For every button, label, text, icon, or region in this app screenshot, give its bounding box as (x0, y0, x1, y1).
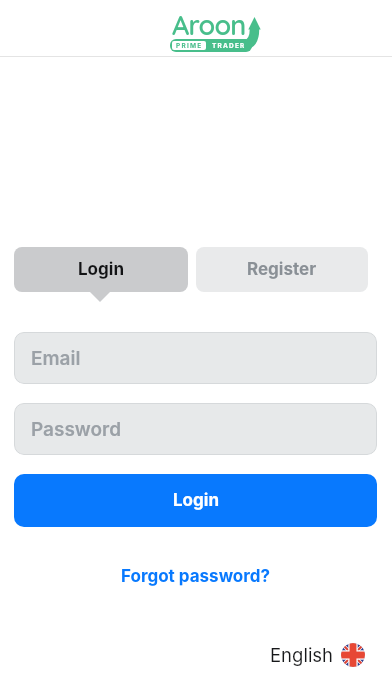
staticText: TRADER (212, 42, 246, 50)
staticText: Aroon (172, 8, 246, 42)
staticText: Login (78, 259, 124, 280)
button[interactable]: Login (14, 474, 377, 527)
button[interactable]: Register (196, 247, 368, 292)
button[interactable]: Email (14, 332, 377, 384)
staticText: Password (31, 418, 122, 441)
staticText: English (270, 644, 334, 666)
staticText: Login (173, 490, 219, 511)
button[interactable]: Password (14, 403, 377, 455)
staticText: Register (247, 259, 317, 280)
staticText: Email (31, 347, 81, 370)
staticText: Forgot password? (121, 566, 271, 587)
button[interactable]: English (270, 641, 365, 669)
staticText: PRIME (176, 42, 203, 50)
button[interactable]: Login (14, 247, 188, 292)
button[interactable]: Forgot password? (115, 560, 277, 593)
